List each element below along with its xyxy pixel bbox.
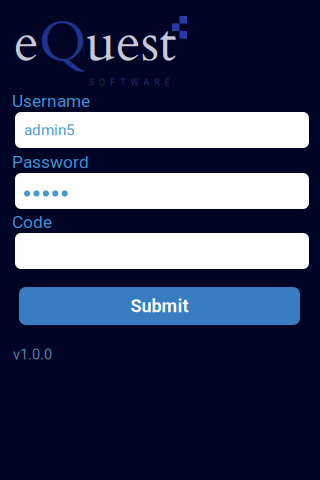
staticText: e <box>14 6 39 80</box>
staticText: admin5 <box>24 121 75 139</box>
button[interactable] <box>15 233 309 269</box>
staticText: Q <box>39 6 86 80</box>
staticText: Password <box>12 152 89 172</box>
button[interactable]: admin5 <box>15 112 309 148</box>
staticText: Code <box>12 212 52 232</box>
staticText: Username <box>12 91 90 111</box>
staticText: v1.0.0 <box>13 346 52 363</box>
button[interactable] <box>15 173 309 209</box>
button[interactable]: Submit <box>19 287 300 325</box>
staticText: Submit <box>130 295 188 317</box>
staticText: uest <box>86 6 176 80</box>
staticText: SOFTWARE <box>89 77 170 88</box>
